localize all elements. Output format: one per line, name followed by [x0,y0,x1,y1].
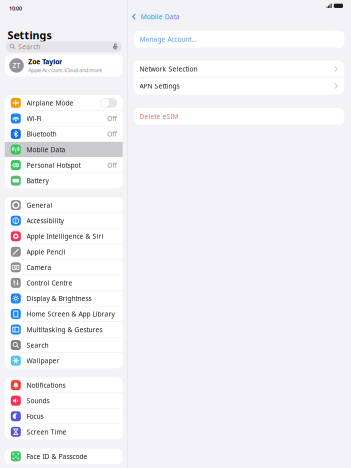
staticText: Multitasking & Gestures [26,325,102,334]
staticText: Sounds [26,396,49,405]
button[interactable]: Search [5,337,123,353]
staticText: Screen Time [26,427,66,436]
button[interactable]: Multitasking & Gestures [5,322,123,337]
button[interactable]: Focus [5,409,123,424]
staticText: 10:00 [9,5,22,12]
button[interactable]: Notifications [5,378,123,393]
button[interactable]: APN Settings [134,78,344,94]
staticText: Notifications [26,381,65,390]
staticText: Off [107,130,117,138]
button[interactable]: Home Screen & App Library [5,306,123,321]
staticText: Accessibility [26,216,63,225]
staticText: Face ID & Passcode [26,452,87,461]
staticText: Wallpaper [26,356,59,365]
staticText: Search [18,42,40,51]
button[interactable]: Control Centre [5,275,123,290]
staticText: Display & Brightness [26,294,91,303]
staticText: Apple Intelligence & Siri [26,232,103,241]
staticText: Zoe Taylor [28,57,62,66]
staticText: Off [107,161,117,170]
button[interactable]: Bluetooth [5,126,123,141]
staticText: Search [26,341,48,350]
staticText: Mobile Data [141,12,180,21]
button[interactable]: Sounds [5,393,123,408]
staticText: Network Selection [140,64,198,73]
staticText: Settings [7,28,51,42]
staticText: ZT [13,61,21,70]
staticText: Wi-Fi [26,114,41,123]
button[interactable]: Screen Time [5,424,123,439]
button[interactable]: Personal Hotspot [5,157,123,173]
staticText: General [26,201,52,210]
staticText: Home Screen & App Library [26,310,114,318]
button[interactable]: Network Selection [134,61,344,77]
button[interactable]: Mobile Data [128,8,180,24]
staticText: Apple Pencil [26,247,65,256]
staticText: Personal Hotspot [26,161,80,170]
button[interactable]: Camera [5,260,123,275]
staticText: Delete eSIM [140,112,179,121]
button[interactable]: Battery [5,173,123,188]
staticText: Airplane Mode [26,98,73,107]
button[interactable]: Mobile Data [5,142,123,157]
staticText: Focus [26,412,43,421]
button[interactable]: Manage Account… [134,31,344,47]
button[interactable]: Accessibility [5,213,123,228]
button[interactable]: General [5,198,123,213]
button[interactable]: Wi-Fi [5,111,123,126]
button[interactable]: Display & Brightness [5,291,123,306]
button[interactable]: Apple Intelligence & Siri [5,229,123,244]
staticText: Apple Account, iCloud and more [28,67,102,74]
button[interactable]: Apple Pencil [5,244,123,259]
staticText: Off [107,114,117,123]
staticText: APN Settings [140,82,180,90]
staticText: Control Centre [26,278,72,287]
staticText: Camera [26,263,51,272]
button[interactable]: Wallpaper [5,353,123,368]
staticText: Battery [26,176,48,185]
button[interactable]: Delete eSIM [134,108,344,125]
button[interactable]: Airplane Mode [5,95,123,110]
staticText: Bluetooth [26,130,56,138]
button[interactable]: ZT [5,54,123,76]
staticText: Mobile Data [26,145,65,154]
button[interactable]: Face ID & Passcode [5,449,123,464]
staticText: Manage Account… [140,35,197,44]
